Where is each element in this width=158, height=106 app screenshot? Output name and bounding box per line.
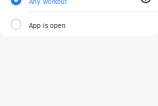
button[interactable]: Any workout <box>0 0 158 11</box>
staticText: App is open <box>29 22 66 30</box>
staticText: Any workout <box>29 0 67 5</box>
button[interactable]: App is open <box>0 12 158 36</box>
